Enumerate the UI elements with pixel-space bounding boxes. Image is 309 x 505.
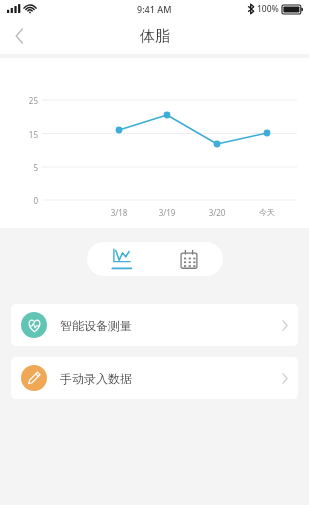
button[interactable]: 智能设备测量 xyxy=(11,304,298,346)
staticText: 9:41 AM xyxy=(137,3,172,15)
staticText: 3/19 xyxy=(151,207,183,218)
staticText: 100% xyxy=(257,3,279,15)
button[interactable]: Chart view xyxy=(87,242,155,276)
button[interactable]: 手动录入数据 xyxy=(11,357,298,399)
staticText: 5 xyxy=(18,162,38,173)
staticText: 体脂 xyxy=(140,27,170,46)
staticText: 3/18 xyxy=(103,207,135,218)
staticText: 0 xyxy=(18,195,38,206)
staticText: 15 xyxy=(18,129,38,140)
staticText: 今天 xyxy=(251,207,283,217)
button[interactable]: Back xyxy=(0,18,38,54)
staticText: 25 xyxy=(18,95,38,106)
staticText: 智能设备测量 xyxy=(60,318,132,333)
staticText: 3/20 xyxy=(201,207,233,218)
button[interactable]: Calendar view xyxy=(155,242,223,276)
staticText: 手动录入数据 xyxy=(60,371,132,386)
